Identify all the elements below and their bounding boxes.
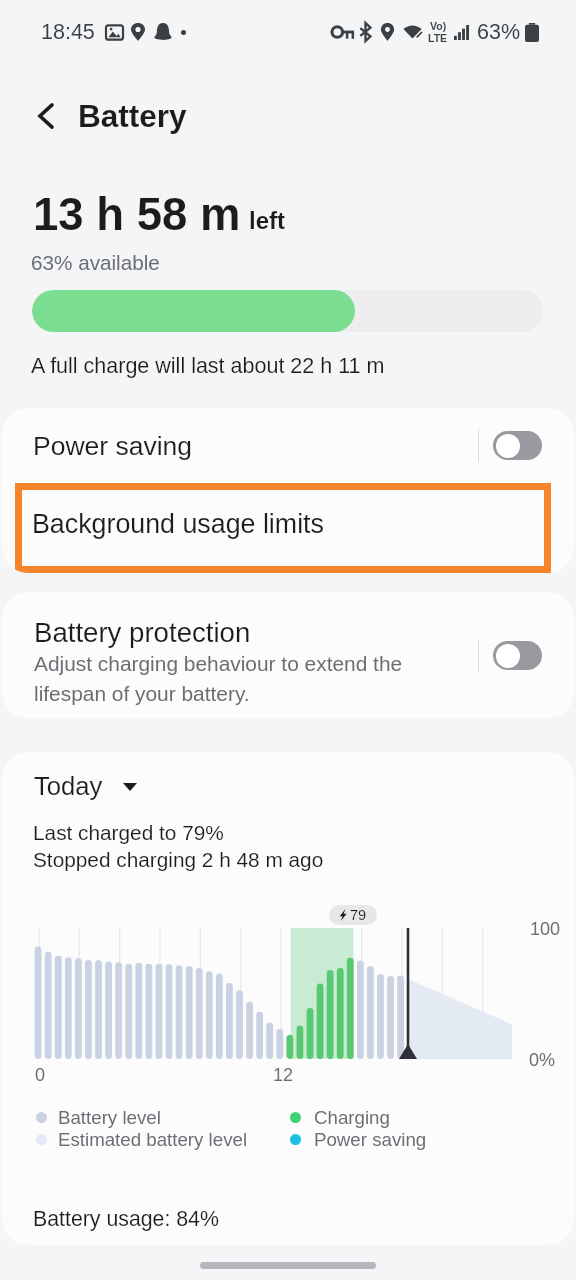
button[interactable]: Toggle	[493, 431, 542, 460]
staticText: Battery usage: 84%	[33, 1207, 219, 1231]
staticText: 18:45	[41, 20, 95, 44]
staticText: 12	[273, 1065, 294, 1085]
staticText: left	[249, 207, 285, 234]
staticText: Last charged to 79% Stopped charging 2 h…	[33, 821, 324, 872]
staticText: Vo)	[430, 20, 447, 32]
staticText: A full charge will last about 22 h 11 m	[31, 354, 385, 378]
staticText: Battery protection	[34, 617, 251, 648]
button[interactable]: Background usage limits	[22, 490, 544, 566]
staticText: Battery	[78, 98, 187, 133]
staticText: Estimated battery level	[58, 1129, 248, 1150]
button[interactable]: Battery protection	[2, 592, 574, 718]
staticText: Power saving	[314, 1129, 427, 1150]
staticText: 63% available	[31, 251, 160, 274]
staticText: 79	[350, 907, 367, 923]
button[interactable]: Back	[22, 92, 70, 140]
staticText: 100	[530, 919, 561, 939]
staticText: Battery level	[58, 1107, 161, 1128]
staticText: 13 h 58 m	[33, 189, 241, 240]
staticText: Background usage limits	[32, 509, 324, 539]
staticText: Today	[34, 772, 103, 801]
button[interactable]: Today	[34, 772, 137, 801]
staticText: Adjust charging behaviour to extend the …	[34, 652, 403, 705]
staticText: 0%	[529, 1050, 556, 1070]
staticText: 63%	[477, 20, 521, 44]
button[interactable]: Power saving	[2, 408, 574, 483]
staticText: 0	[35, 1065, 46, 1085]
staticText: Charging	[314, 1107, 390, 1128]
staticText: Power saving	[33, 431, 193, 461]
button[interactable]: Toggle	[493, 641, 542, 670]
staticText: LTE	[428, 32, 448, 44]
